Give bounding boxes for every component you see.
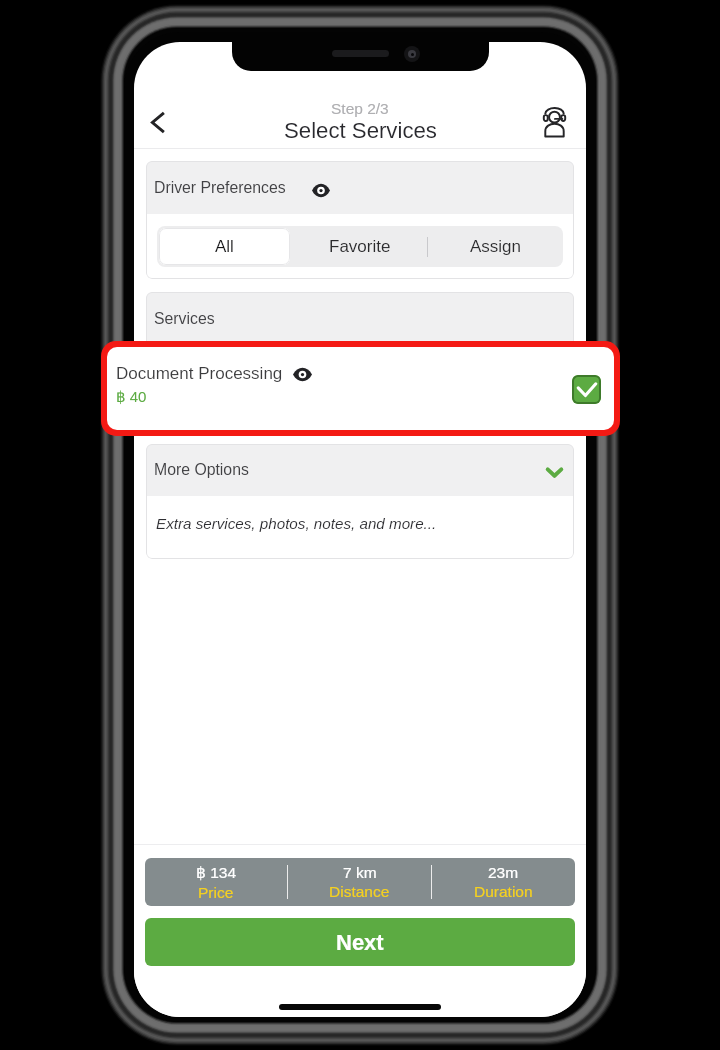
button[interactable]: ฿ 134 [145,858,287,906]
staticText: Services [154,310,215,328]
button[interactable]: Customer support [532,100,576,144]
button[interactable]: 7 km [288,858,431,906]
staticText: More Options [154,461,249,479]
staticText: 23m [488,864,519,881]
staticText: Duration [474,883,533,900]
button[interactable]: Assign [428,226,563,267]
staticText: Assign [470,237,522,256]
staticText: Document Processing [116,364,283,383]
button[interactable]: 23m [432,858,575,906]
staticText: 7 km [343,864,377,881]
staticText: Driver Preferences [154,179,286,197]
staticText: Step 2/3 [331,100,389,117]
button[interactable]: Document Processing [107,347,614,430]
staticText: Extra services, photos, notes, and more.… [156,515,437,532]
staticText: Select Services [284,118,437,143]
button[interactable]: All [159,228,290,265]
button[interactable]: Back [136,100,180,144]
button[interactable]: Services [146,292,574,345]
staticText: Favorite [329,237,391,256]
staticText: ฿ 134 [196,864,237,882]
button[interactable]: Favorite [292,226,427,267]
staticText: All [215,237,234,256]
staticText: ฿ 40 [116,388,147,405]
staticText: Price [198,884,234,901]
button[interactable]: Next [145,918,575,966]
button[interactable]: Service selected [572,375,601,404]
staticText: Distance [329,883,390,900]
staticText: Next [336,930,384,955]
button[interactable]: More Options [146,444,574,496]
button[interactable]: Driver Preferences [146,161,574,214]
